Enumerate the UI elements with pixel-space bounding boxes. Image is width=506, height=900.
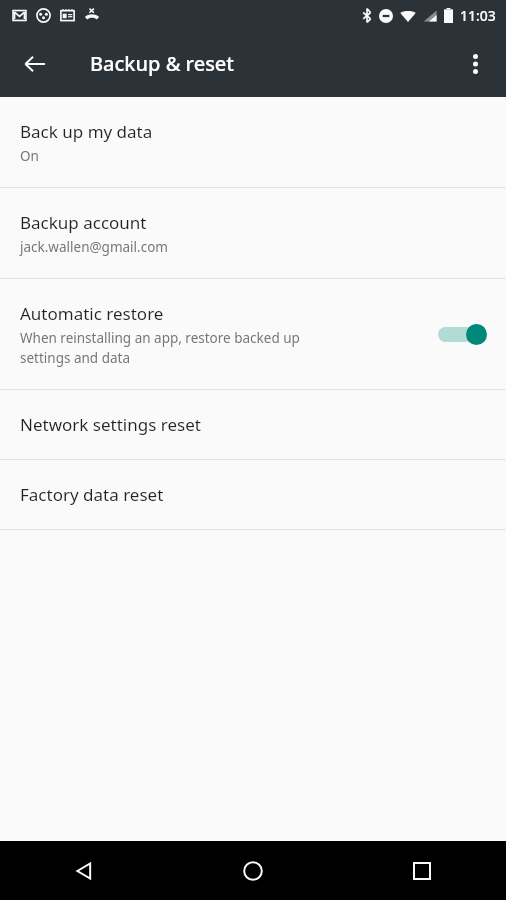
staticText: Automatic restore	[20, 302, 164, 325]
staticText: On	[20, 147, 39, 165]
button[interactable]: More options	[451, 40, 499, 88]
button[interactable]: Automatic restore toggle	[436, 317, 488, 351]
button[interactable]: Home	[168, 841, 337, 900]
staticText: jack.wallen@gmail.com	[20, 238, 168, 256]
staticText: When reinstalling an app, restore backed…	[20, 329, 300, 367]
button[interactable]: Back up my data	[0, 97, 506, 187]
button[interactable]: Factory data reset	[0, 460, 506, 529]
staticText: Network settings reset	[20, 413, 201, 436]
staticText: Factory data reset	[20, 483, 164, 506]
staticText: Backup account	[20, 211, 147, 234]
button[interactable]: Network settings reset	[0, 390, 506, 459]
staticText: Back up my data	[20, 120, 153, 143]
button[interactable]: Back	[0, 841, 168, 900]
button[interactable]: Back	[11, 40, 59, 88]
button[interactable]: Automatic restore	[0, 279, 506, 389]
button[interactable]: Recent apps	[337, 841, 506, 900]
staticText: 11:03	[460, 6, 496, 25]
staticText: Backup & reset	[90, 50, 234, 77]
button[interactable]: Backup account	[0, 188, 506, 278]
